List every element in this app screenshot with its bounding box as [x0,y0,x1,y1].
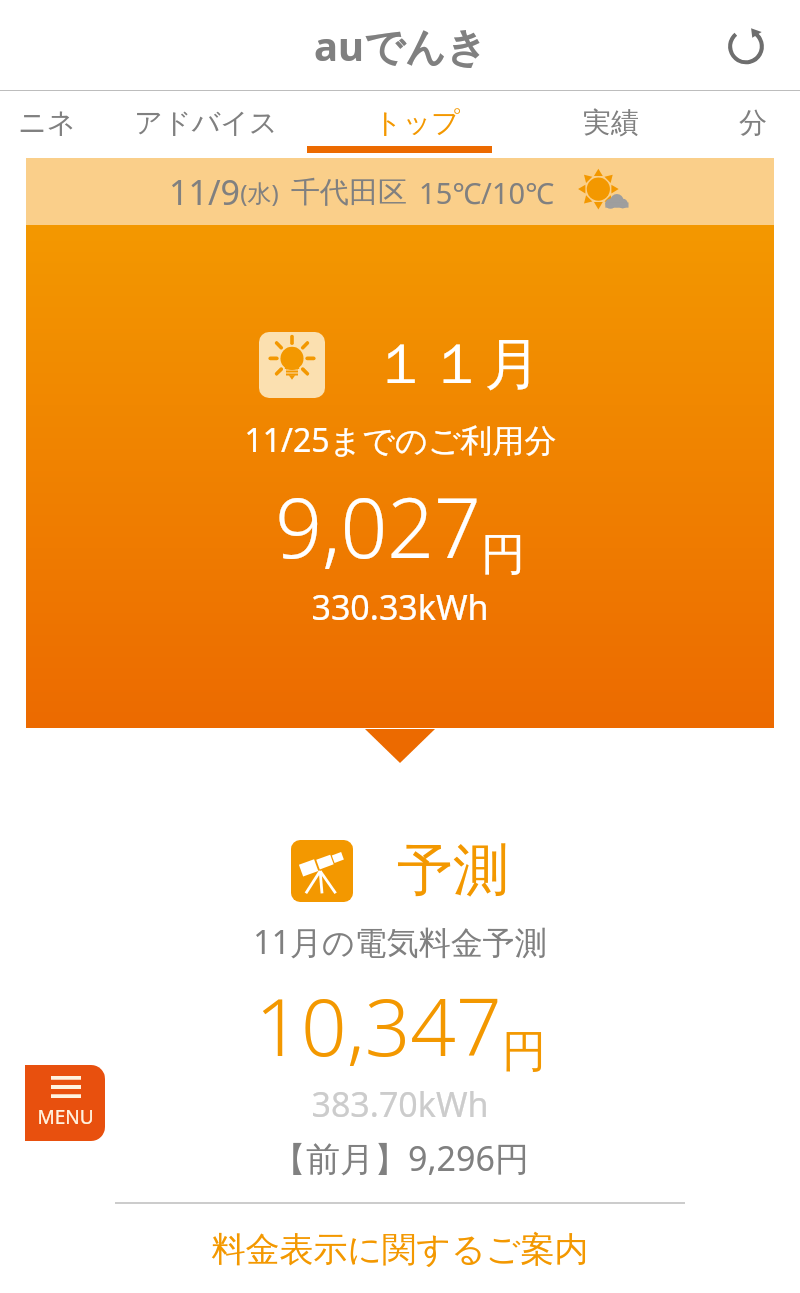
staticText: 円 [481,527,525,582]
staticText: 330.33kWh [311,584,489,630]
staticText: 千代田区 [291,174,407,211]
button[interactable]: 11/9 [26,158,774,225]
staticText: 分 [739,105,767,140]
staticText: 383.70kWh [311,1081,489,1127]
staticText: 11/9 [169,169,240,215]
staticText: １１月 [373,329,541,400]
staticText: ニネ [18,105,76,140]
staticText: 料金表示に関するご案内 [211,1228,589,1271]
button[interactable]: 実績 [516,91,705,153]
staticText: (水) [240,176,279,209]
button[interactable]: Menu [25,1065,105,1141]
staticText: 【前月】9,296円 [272,1135,529,1181]
staticText: トップ [374,105,460,140]
staticText: 15℃/10℃ [419,173,554,212]
staticText: 予測 [397,835,509,906]
staticText: 実績 [583,105,639,140]
button[interactable]: 料金表示に関するご案内 [0,1204,800,1293]
staticText: 11月の電気料金予測 [253,920,547,964]
button[interactable]: トップ [318,91,516,153]
staticText: 11/25までのご利用分 [244,418,557,462]
staticText: 9,027 [275,470,481,582]
button[interactable]: １１月 [26,225,774,728]
button[interactable]: 分 [705,91,800,153]
staticText: auでんき [314,18,487,73]
staticText: 円 [502,1024,546,1079]
staticText: 10,347 [255,970,502,1079]
button[interactable]: アドバイス [94,91,318,153]
button[interactable]: ニネ [0,91,94,153]
staticText: MENU [37,1104,94,1130]
button[interactable]: Refresh [720,19,772,71]
staticText: アドバイス [134,105,278,140]
